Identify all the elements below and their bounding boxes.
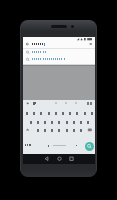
button[interactable] — [85, 142, 94, 151]
button[interactable] — [42, 154, 51, 164]
button[interactable] — [24, 142, 33, 148]
button[interactable] — [23, 41, 95, 48]
button[interactable] — [23, 49, 95, 56]
button[interactable] — [24, 100, 32, 107]
button[interactable] — [23, 126, 95, 135]
button[interactable] — [23, 109, 95, 117]
button[interactable] — [67, 154, 76, 164]
button[interactable] — [23, 56, 95, 63]
button[interactable] — [55, 154, 64, 164]
button[interactable] — [23, 118, 95, 126]
